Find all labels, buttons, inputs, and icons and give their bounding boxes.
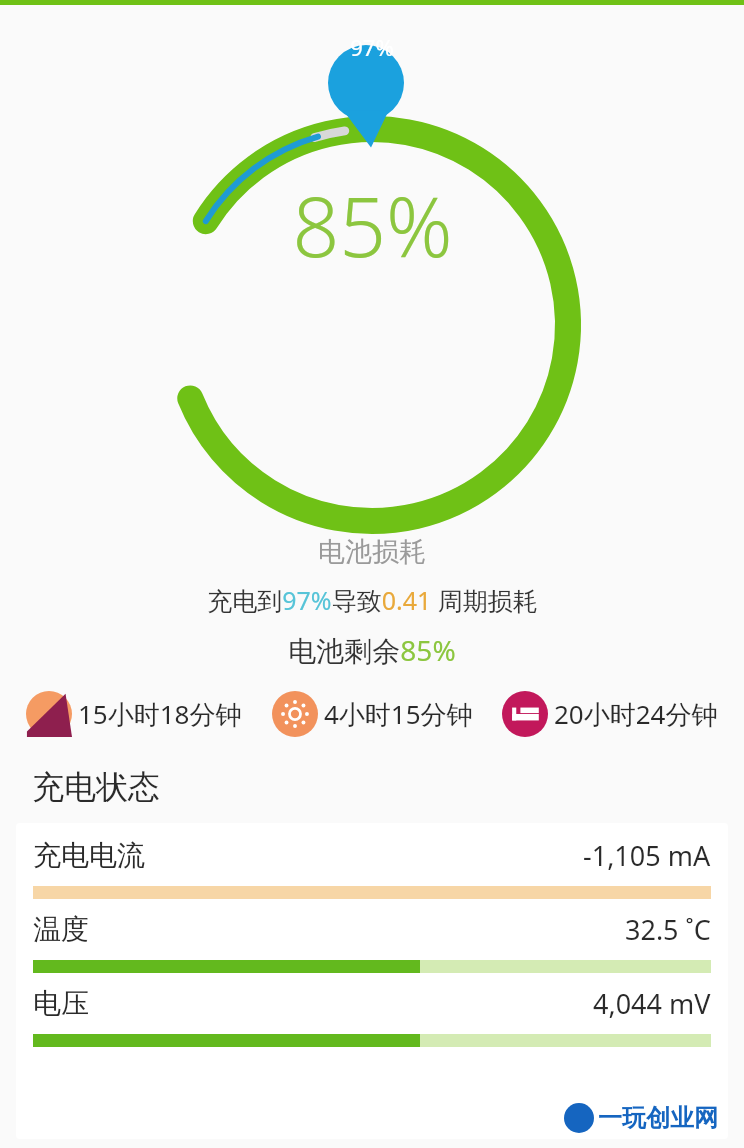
- staticText: 85%: [292, 169, 453, 281]
- staticText: 97%: [350, 32, 394, 62]
- staticText: 充电电流: [33, 838, 145, 873]
- staticText: 32.5 ˚C: [625, 911, 711, 948]
- staticText: 一玩创业网: [598, 1103, 718, 1133]
- staticText: 4小时15分钟: [324, 696, 473, 732]
- button[interactable]: 4小时15分钟: [270, 689, 475, 739]
- staticText: 15小时18分钟: [78, 696, 242, 732]
- staticText: 20小时24分钟: [554, 696, 718, 732]
- button[interactable]: 温度: [33, 911, 711, 973]
- staticText: 电池损耗: [318, 535, 426, 569]
- staticText: 电池剩余85%: [288, 631, 456, 669]
- staticText: 充电到97%导致0.41 周期损耗: [207, 583, 538, 617]
- staticText: 温度: [33, 912, 89, 947]
- staticText: 充电状态: [32, 767, 160, 807]
- staticText: 电压: [33, 986, 89, 1021]
- staticText: 4,044 mV: [593, 985, 711, 1022]
- button[interactable]: 20小时24分钟: [500, 689, 720, 739]
- staticText: -1,105 mA: [583, 837, 711, 874]
- button[interactable]: 15小时18分钟: [24, 689, 244, 739]
- button[interactable]: 电压: [33, 985, 711, 1047]
- button[interactable]: 充电电流: [33, 837, 711, 899]
